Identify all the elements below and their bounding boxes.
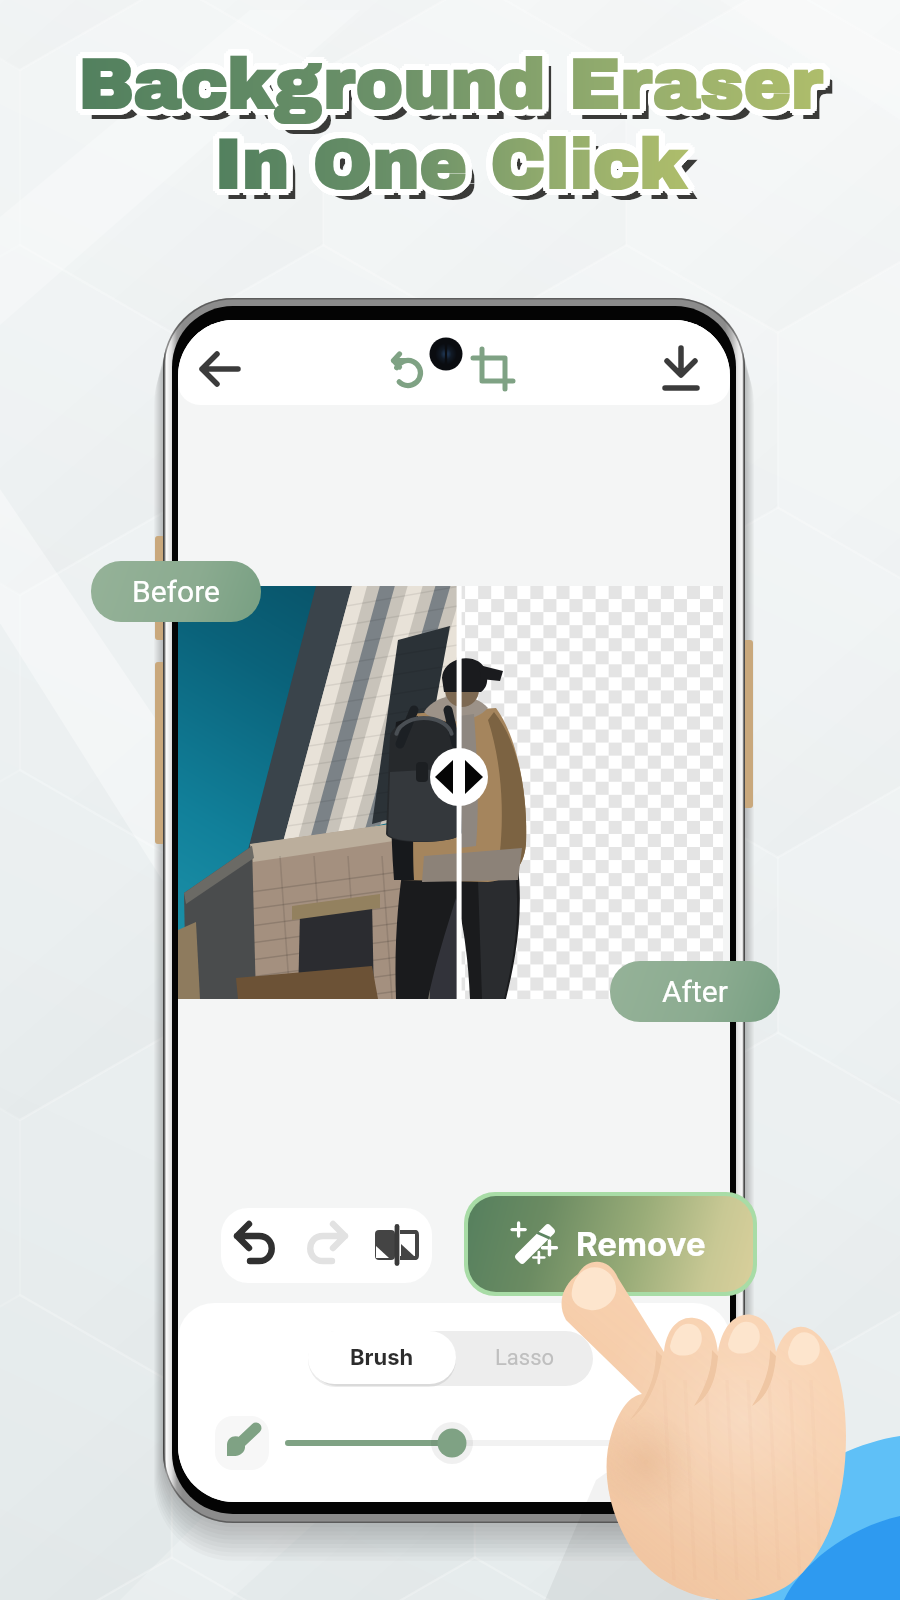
staticText: Background Eraser <box>84 44 829 121</box>
staticText: Background Eraser <box>80 52 825 129</box>
staticText: Before <box>132 574 220 609</box>
staticText: Brush <box>350 1344 414 1371</box>
button[interactable]: Lasso <box>456 1331 593 1384</box>
button[interactable]: Before <box>91 561 261 622</box>
staticText: Background Eraser <box>78 52 823 129</box>
staticText: Background Eraser <box>84 44 829 121</box>
staticText: In One Click <box>214 132 687 209</box>
staticText: In One Click <box>223 136 696 213</box>
button[interactable]: Brush <box>215 1416 269 1470</box>
button[interactable]: Rotate <box>383 343 435 395</box>
staticText: Background Eraser <box>72 46 817 123</box>
staticText: Background Eraser <box>78 52 823 129</box>
staticText: Background Eraser <box>84 48 829 125</box>
staticText: After <box>662 974 728 1009</box>
staticText: In One Click <box>208 124 681 201</box>
button[interactable]: Compare before and after <box>361 1208 432 1283</box>
staticText: Background Eraser <box>72 46 817 123</box>
button[interactable]: Drag to compare <box>430 748 488 806</box>
staticText: In One Click <box>220 126 693 203</box>
staticText: In One Click <box>212 120 685 197</box>
staticText: In One Click <box>208 128 681 205</box>
staticText: Background Eraser <box>72 44 817 121</box>
button[interactable]: Back <box>195 343 247 395</box>
staticText: Background Eraser <box>76 40 821 117</box>
staticText: In One Click <box>216 132 689 209</box>
staticText: Background Eraser <box>76 52 821 129</box>
staticText: In One Click <box>212 132 685 209</box>
staticText: Background Eraser <box>72 44 817 121</box>
staticText: In One Click <box>220 124 693 201</box>
staticText: In One Click <box>218 130 691 207</box>
staticText: In One Click <box>210 130 683 207</box>
button[interactable]: Redo <box>291 1208 361 1283</box>
staticText: Background Eraser <box>76 40 821 117</box>
staticText: In One Click <box>216 132 689 209</box>
staticText: Background Eraser <box>78 40 823 117</box>
staticText: In One Click <box>220 128 693 205</box>
button[interactable]: Brush size slider <box>284 1420 628 1466</box>
staticText: In One Click <box>210 122 683 199</box>
staticText: Background Eraser <box>74 42 819 119</box>
staticText: Background Eraser <box>82 50 827 127</box>
staticText: Background Eraser <box>84 48 829 125</box>
staticText: Background Eraser <box>82 42 827 119</box>
staticText: Background Eraser <box>80 40 825 117</box>
staticText: Background Eraser <box>72 48 817 125</box>
staticText: In One Click <box>214 120 687 197</box>
staticText: In One Click <box>212 120 685 197</box>
button[interactable]: Remove <box>468 1196 753 1292</box>
staticText: In One Click <box>208 124 681 201</box>
staticText: In One Click <box>208 128 681 205</box>
button[interactable]: Brush <box>308 1331 456 1384</box>
staticText: Background Eraser <box>84 46 829 123</box>
staticText: Background Eraser <box>84 46 829 123</box>
staticText: Background Eraser <box>74 50 819 127</box>
button[interactable]: After <box>610 961 780 1022</box>
staticText: In One Click <box>214 132 687 209</box>
staticText: In One Click <box>218 130 691 207</box>
staticText: Background Eraser <box>72 48 817 125</box>
staticText: Lasso <box>495 1345 555 1371</box>
staticText: In One Click <box>214 120 687 197</box>
staticText: Background Eraser <box>80 40 825 117</box>
button[interactable]: Download <box>656 343 708 395</box>
staticText: Background Eraser <box>87 56 832 133</box>
staticText: In One Click <box>216 120 689 197</box>
staticText: In One Click <box>220 126 693 203</box>
staticText: Background Eraser <box>74 50 819 127</box>
staticText: In One Click <box>218 122 691 199</box>
staticText: In One Click <box>208 126 681 203</box>
staticText: In One Click <box>220 128 693 205</box>
staticText: Background Eraser <box>76 52 821 129</box>
staticText: Background Eraser <box>80 52 825 129</box>
staticText: Background Eraser <box>82 50 827 127</box>
staticText: In One Click <box>220 124 693 201</box>
staticText: In One Click <box>214 126 687 203</box>
button[interactable]: Undo <box>221 1208 291 1283</box>
staticText: In One Click <box>210 122 683 199</box>
staticText: In One Click <box>218 122 691 199</box>
staticText: Background Eraser <box>74 42 819 119</box>
staticText: Remove <box>576 1224 706 1264</box>
staticText: In One Click <box>208 126 681 203</box>
staticText: Background Eraser <box>82 42 827 119</box>
button[interactable]: Crop <box>468 343 520 395</box>
staticText: In One Click <box>216 120 689 197</box>
staticText: Background Eraser <box>78 46 823 123</box>
staticText: In One Click <box>212 132 685 209</box>
staticText: Background Eraser <box>78 40 823 117</box>
staticText: In One Click <box>210 130 683 207</box>
